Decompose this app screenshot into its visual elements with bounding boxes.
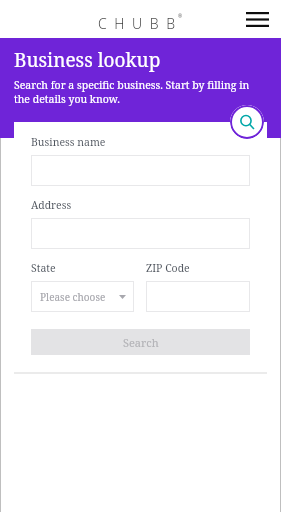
button[interactable]: Menu — [243, 5, 271, 33]
staticText: Business name — [31, 135, 106, 149]
staticText: State — [31, 261, 56, 275]
button[interactable] — [31, 218, 250, 249]
button[interactable]: Search — [31, 329, 250, 355]
staticText: Search for a specific business. Start by… — [14, 78, 267, 106]
staticText: ZIP Code — [146, 261, 190, 275]
button[interactable]: Please choose — [31, 281, 134, 312]
staticText: Business lookup — [14, 47, 161, 73]
staticText: Please choose — [40, 290, 106, 304]
button[interactable] — [146, 281, 250, 312]
staticText: ® — [178, 13, 183, 20]
staticText: C H U B B — [98, 14, 178, 33]
button[interactable]: Search — [230, 105, 264, 139]
staticText: Search — [123, 335, 159, 350]
button[interactable] — [31, 155, 250, 186]
staticText: Address — [31, 198, 72, 212]
button[interactable]: C H U B B — [98, 10, 183, 29]
